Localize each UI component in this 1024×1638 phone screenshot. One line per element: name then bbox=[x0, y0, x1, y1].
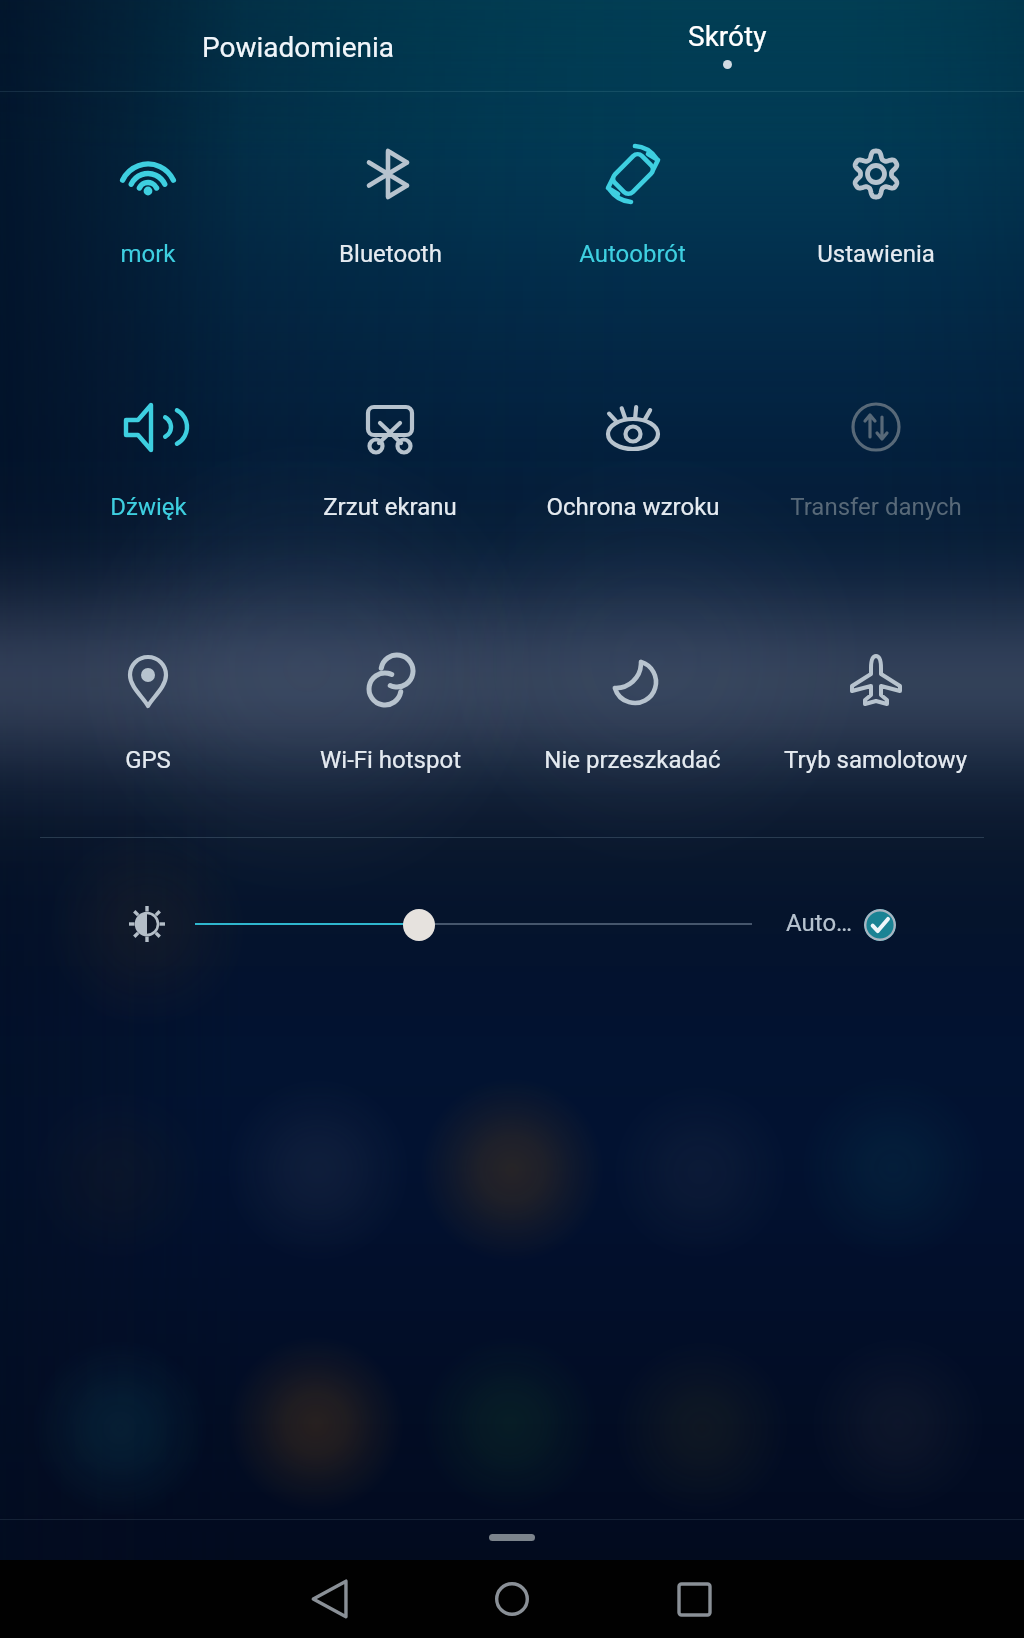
staticText: Auto… bbox=[786, 909, 853, 937]
staticText: GPS bbox=[125, 746, 171, 774]
button[interactable]: Back bbox=[300, 1569, 360, 1629]
button[interactable]: Dźwięk bbox=[27, 373, 269, 543]
staticText: Nie przeszkadać bbox=[544, 746, 721, 774]
button[interactable]: Zrzut ekranu bbox=[269, 373, 511, 543]
button[interactable]: Tryb samolotowy bbox=[754, 626, 997, 796]
button[interactable]: Auto brightness bbox=[864, 909, 896, 941]
staticText: Tryb samolotowy bbox=[784, 746, 967, 774]
staticText: Ustawienia bbox=[817, 240, 935, 268]
staticText: Bluetooth bbox=[339, 240, 442, 268]
staticText: Autoobrót bbox=[579, 240, 686, 268]
button[interactable]: GPS bbox=[27, 626, 269, 796]
staticText: Ochrona wzroku bbox=[546, 493, 720, 521]
button[interactable]: Brightness slider bbox=[403, 909, 435, 941]
button[interactable]: Skróty bbox=[535, 0, 919, 92]
staticText: Skróty bbox=[688, 20, 767, 53]
button[interactable]: Ochrona wzroku bbox=[511, 373, 754, 543]
button[interactable]: Transfer danych bbox=[754, 373, 997, 543]
button[interactable]: mork bbox=[27, 120, 269, 290]
staticText: Zrzut ekranu bbox=[323, 493, 457, 521]
staticText: Powiadomienia bbox=[202, 31, 395, 64]
button[interactable]: Nie przeszkadać bbox=[511, 626, 754, 796]
button[interactable]: Recents bbox=[664, 1569, 724, 1629]
staticText: Dźwięk bbox=[110, 493, 187, 521]
button[interactable]: Powiadomienia bbox=[106, 0, 490, 92]
button[interactable]: Ustawienia bbox=[754, 120, 997, 290]
staticText: Transfer danych bbox=[790, 493, 962, 521]
button[interactable]: Home bbox=[482, 1569, 542, 1629]
staticText: Wi-Fi hotspot bbox=[320, 746, 461, 774]
button[interactable]: Wi-Fi hotspot bbox=[269, 626, 511, 796]
staticText: mork bbox=[120, 240, 176, 268]
button[interactable]: Bluetooth bbox=[269, 120, 511, 290]
button[interactable]: Autoobrót bbox=[511, 120, 754, 290]
